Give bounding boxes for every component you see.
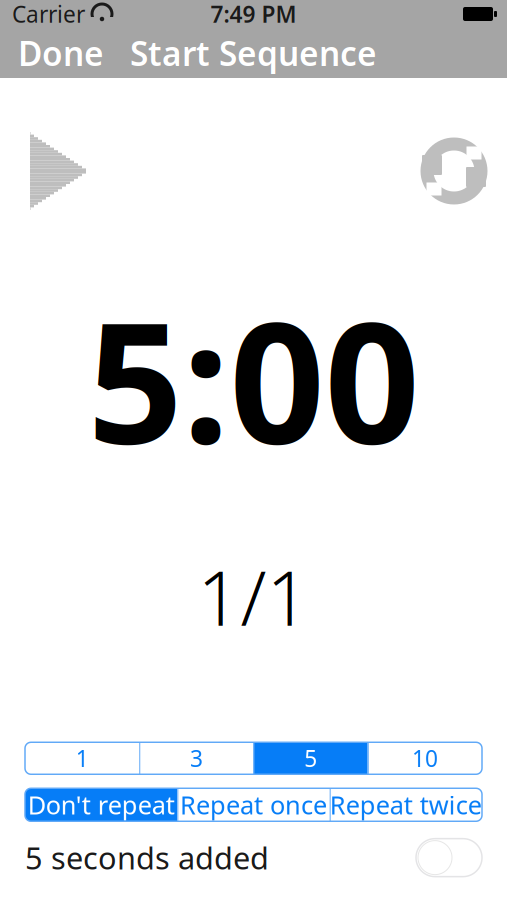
- staticText: 1: [76, 743, 89, 773]
- button[interactable]: Repeat once: [177, 788, 330, 821]
- button[interactable]: 3: [139, 742, 253, 774]
- button[interactable]: 10: [368, 742, 482, 774]
- staticText: Don't repeat: [28, 788, 175, 822]
- button[interactable]: Don't repeat: [25, 788, 177, 821]
- button[interactable]: Done: [4, 23, 118, 83]
- staticText: Done: [18, 31, 104, 75]
- staticText: Carrier: [12, 0, 85, 29]
- staticText: Start Sequence: [130, 31, 377, 75]
- staticText: Repeat twice: [330, 788, 482, 822]
- staticText: 5:00: [87, 268, 419, 489]
- staticText: 10: [412, 743, 438, 773]
- button[interactable]: Start: [24, 126, 94, 216]
- staticText: 7:49 PM: [210, 0, 296, 29]
- staticText: 5: [304, 743, 317, 773]
- staticText: 5 seconds added: [25, 837, 269, 878]
- staticText: 1/1: [197, 547, 309, 646]
- button[interactable]: Repeat twice: [330, 788, 482, 821]
- button[interactable]: Reset: [419, 136, 489, 206]
- button[interactable]: 1: [25, 742, 139, 774]
- staticText: 3: [190, 743, 203, 773]
- button[interactable]: Add seconds: [416, 839, 482, 877]
- staticText: Repeat once: [180, 788, 327, 822]
- button[interactable]: 5: [253, 742, 368, 774]
